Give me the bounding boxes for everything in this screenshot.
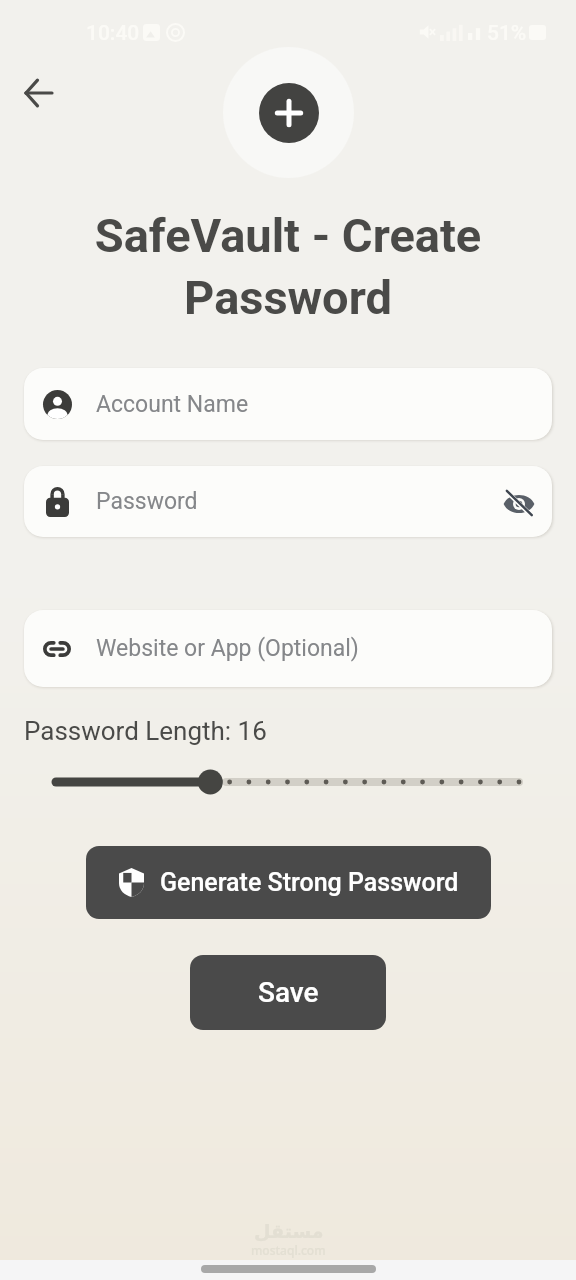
staticText: مستقل: [254, 1220, 324, 1242]
staticText: Password Length: 16: [24, 716, 267, 746]
staticText: Website or App (Optional): [96, 635, 359, 662]
staticText: SafeVault - Create Password: [40, 208, 536, 326]
staticText: Password: [96, 488, 198, 515]
staticText: Generate Strong Password: [160, 868, 459, 897]
button[interactable]: Password length slider: [0, 762, 576, 802]
button[interactable]: Website or App (Optional): [24, 610, 552, 687]
staticText: Account Name: [96, 391, 249, 418]
button[interactable]: Back: [14, 68, 64, 118]
button[interactable]: Account Name: [24, 368, 552, 440]
staticText: 10:40: [86, 21, 140, 46]
button[interactable]: Add: [223, 47, 354, 178]
staticText: Save: [258, 976, 319, 1009]
button[interactable]: Password: [24, 466, 552, 537]
button[interactable]: Generate Strong Password: [86, 846, 491, 919]
button[interactable]: Save: [190, 955, 386, 1030]
staticText: 51%: [487, 21, 527, 46]
staticText: mostaql.com: [251, 1242, 326, 1258]
